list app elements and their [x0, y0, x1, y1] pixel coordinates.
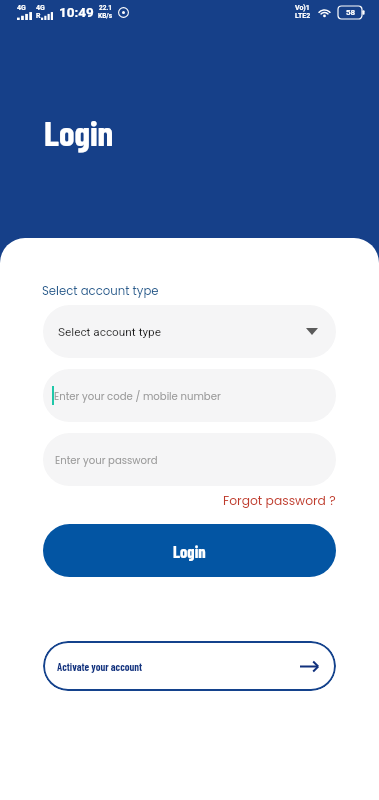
staticText: Enter your password	[55, 453, 158, 467]
other: Activate your account	[300, 661, 319, 672]
staticText: KB/s	[98, 12, 113, 20]
staticText: Select account type	[42, 283, 159, 299]
button[interactable]: Login	[43, 524, 336, 577]
staticText: Enter your code / mobile number	[54, 389, 221, 403]
staticText: LTE2	[295, 12, 311, 20]
staticText: Login	[44, 111, 114, 153]
staticText: 4G	[17, 4, 26, 12]
staticText: 10:49	[59, 4, 94, 20]
staticText: 58	[346, 8, 356, 17]
staticText: Select account type	[58, 325, 161, 339]
staticText: R	[36, 12, 41, 20]
staticText: 22.1	[99, 4, 113, 12]
button[interactable]: Enter your password	[43, 433, 336, 486]
button[interactable]: Enter your code / mobile number	[43, 369, 336, 422]
staticText: Activate your account	[57, 660, 143, 673]
button[interactable]: Activate your account	[43, 641, 336, 691]
staticText: Vo)1	[295, 4, 310, 12]
staticText: 4G	[36, 4, 45, 12]
staticText: Login	[173, 541, 206, 561]
staticText: Forgot password ?	[223, 492, 336, 509]
button[interactable]: Forgot password ?	[223, 492, 336, 509]
button[interactable]: Select account type	[43, 305, 336, 358]
